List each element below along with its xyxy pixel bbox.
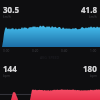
- staticText: 180: [83, 63, 97, 74]
- staticText: 0:20: [32, 49, 39, 53]
- staticText: 0:40: [61, 49, 68, 53]
- staticText: AVG SPEED: [40, 55, 60, 60]
- button[interactable]: [0, 87, 100, 100]
- staticText: 0:00: [3, 49, 10, 53]
- staticText: 30.5: [3, 4, 19, 15]
- staticText: bpm: [90, 74, 97, 78]
- staticText: bpm: [3, 74, 10, 78]
- staticText: 144: [3, 63, 17, 74]
- button[interactable]: [0, 26, 100, 47]
- staticText: 1:00: [90, 49, 97, 53]
- staticText: km/h: [89, 15, 97, 19]
- staticText: 41.8: [81, 4, 97, 15]
- staticText: km/h: [3, 15, 11, 19]
